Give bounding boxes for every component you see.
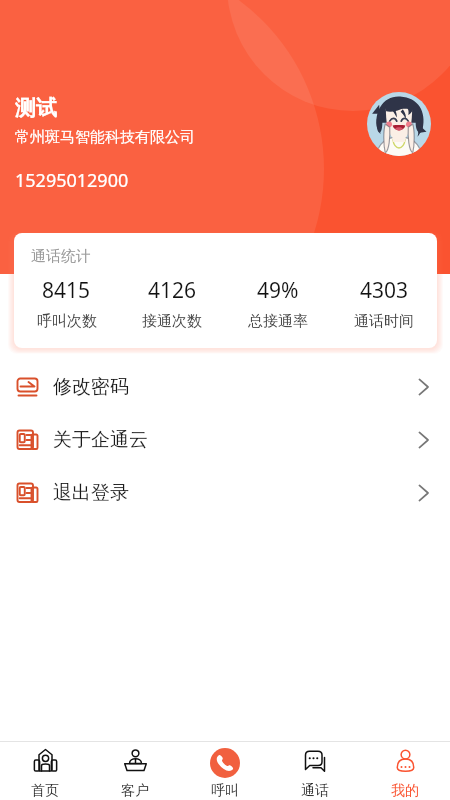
staticText: 客户 bbox=[121, 782, 149, 800]
staticText: 接通次数 bbox=[142, 312, 202, 331]
staticText: 关于企通云 bbox=[53, 428, 148, 452]
button[interactable]: 修改密码 bbox=[0, 374, 450, 426]
button[interactable]: 通话 bbox=[270, 742, 360, 800]
staticText: 4303 bbox=[360, 276, 409, 305]
staticText: 我的 bbox=[391, 782, 419, 800]
staticText: 总接通率 bbox=[248, 312, 308, 331]
button[interactable]: 退出登录 bbox=[0, 480, 450, 532]
staticText: 通话 bbox=[301, 782, 329, 800]
button[interactable]: 呼叫 bbox=[180, 742, 270, 800]
button[interactable]: 我的 bbox=[360, 742, 450, 800]
button[interactable]: 首页 bbox=[0, 742, 90, 800]
staticText: 呼叫次数 bbox=[37, 312, 97, 331]
staticText: 呼叫 bbox=[211, 782, 239, 800]
staticText: 通话统计 bbox=[31, 247, 91, 266]
staticText: 首页 bbox=[31, 782, 59, 800]
staticText: 常州斑马智能科技有限公司 bbox=[15, 128, 195, 147]
button[interactable]: 客户 bbox=[90, 742, 180, 800]
staticText: 测试 bbox=[15, 95, 57, 121]
staticText: 15295012900 bbox=[15, 168, 129, 193]
button[interactable]: 关于企通云 bbox=[0, 427, 450, 479]
staticText: 修改密码 bbox=[53, 375, 129, 399]
staticText: 4126 bbox=[148, 276, 197, 305]
staticText: 通话时间 bbox=[354, 312, 414, 331]
staticText: 退出登录 bbox=[53, 481, 129, 505]
button[interactable]: Profile avatar bbox=[367, 92, 431, 156]
staticText: 49% bbox=[257, 276, 299, 305]
staticText: 8415 bbox=[42, 276, 91, 305]
